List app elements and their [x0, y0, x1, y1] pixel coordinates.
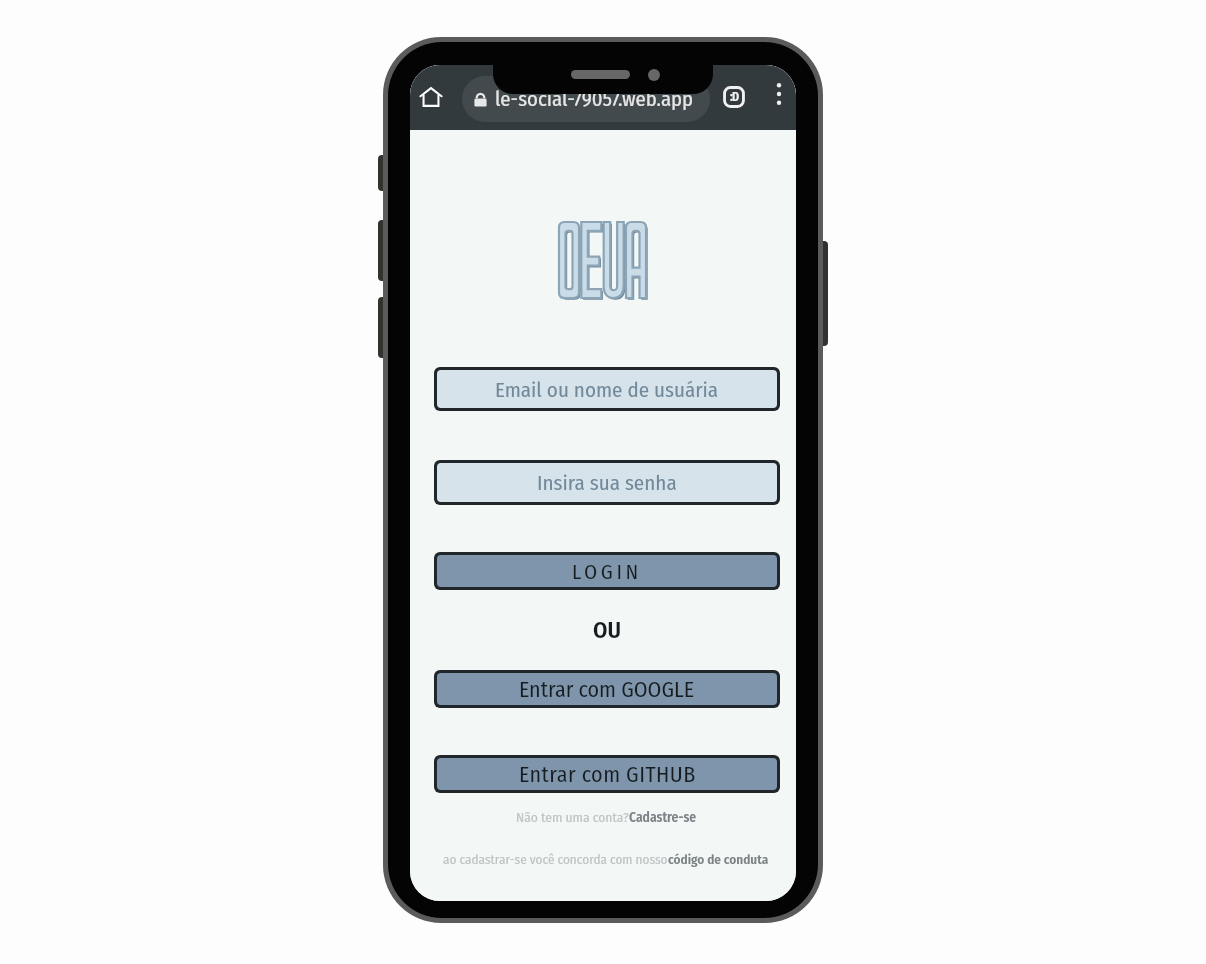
button[interactable]: More options	[765, 80, 793, 108]
button[interactable]: Entrar com GOOGLE	[437, 673, 777, 705]
button[interactable]: Email ou nome de usuária	[437, 370, 777, 408]
button[interactable]: Home	[414, 80, 448, 114]
staticText: :D	[730, 90, 739, 104]
staticText: LOGIN	[572, 559, 642, 584]
staticText: OU	[593, 616, 621, 644]
staticText: Insira sua senha	[537, 470, 677, 495]
staticText: Email ou nome de usuária	[495, 377, 719, 402]
button[interactable]: Tabs	[717, 80, 751, 114]
button[interactable]: Entrar com GITHUB	[437, 758, 777, 790]
staticText: Cadastre-se	[629, 809, 697, 825]
button[interactable]: ao cadastrar-se você concorda com nosso	[443, 852, 769, 868]
button[interactable]: le-social-79057.web.app	[462, 76, 710, 122]
staticText: ao cadastrar-se você concorda com nosso	[443, 852, 668, 868]
button[interactable]: LOGIN	[437, 555, 777, 587]
staticText: código de conduta	[668, 852, 769, 868]
button[interactable]: Insira sua senha	[437, 463, 777, 502]
staticText: le-social-79057.web.app	[495, 87, 694, 112]
staticText: Entrar com GITHUB	[519, 761, 696, 787]
staticText: Não tem uma conta?	[516, 809, 629, 825]
button[interactable]: Não tem uma conta?	[516, 809, 697, 825]
staticText: Entrar com GOOGLE	[519, 676, 695, 702]
